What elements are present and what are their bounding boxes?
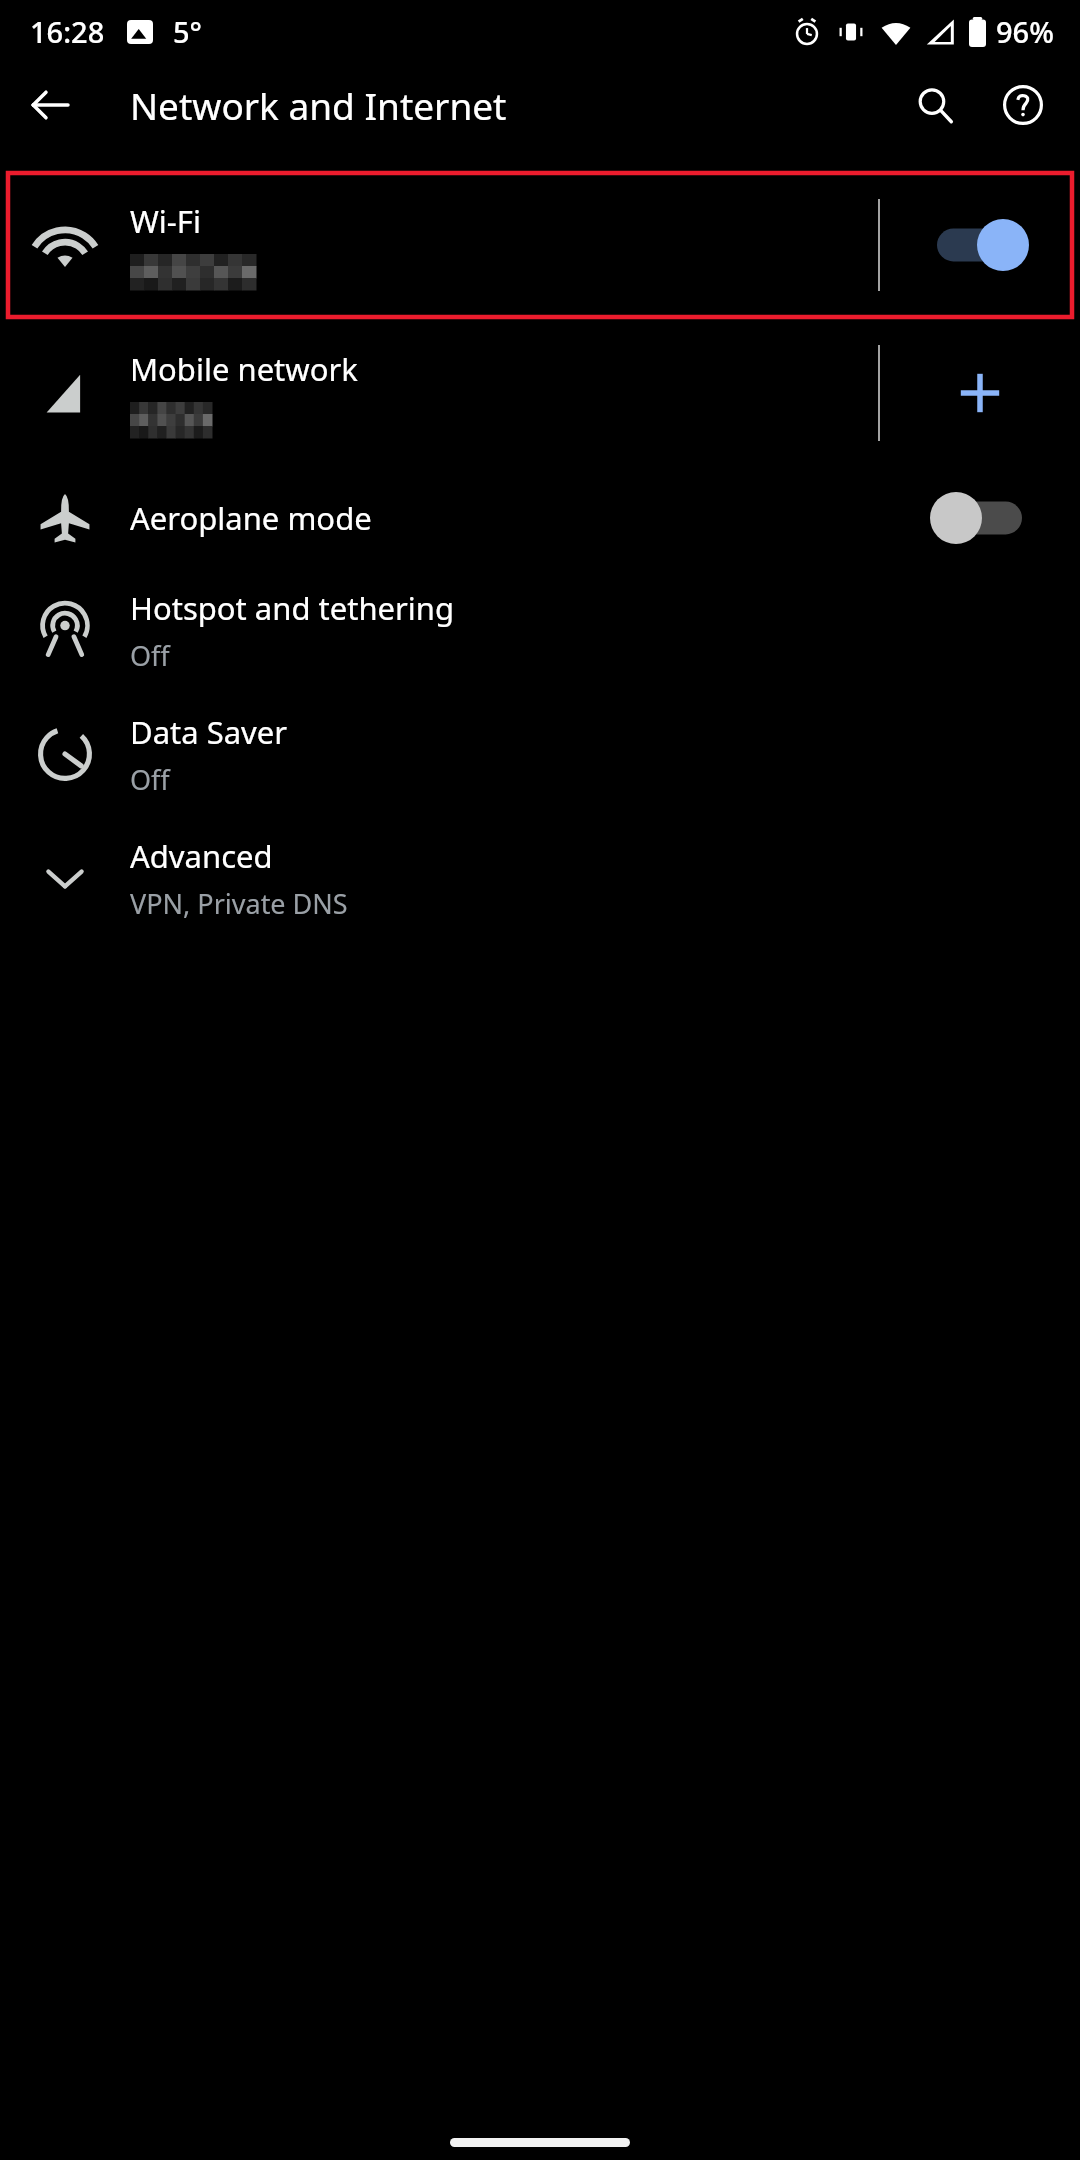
button[interactable]: Add network [880, 319, 1080, 467]
button[interactable]: Search [900, 70, 970, 140]
staticText: 16:28 [30, 12, 105, 51]
staticText: Advanced [130, 835, 273, 877]
button[interactable]: Aeroplane mode off [878, 467, 1080, 568]
button[interactable]: Wi-Fi on [880, 171, 1080, 319]
staticText: 96% [996, 12, 1054, 51]
staticText: Wi-Fi [130, 200, 201, 242]
staticText: Aeroplane mode [130, 497, 878, 539]
button[interactable]: Back [16, 71, 84, 139]
button[interactable]: Aeroplane mode [0, 467, 1080, 568]
staticText: Network and Internet [130, 80, 507, 130]
staticText: 5° [173, 12, 202, 51]
staticText: Mobile network [130, 348, 358, 390]
button[interactable]: Data Saver [0, 692, 1080, 816]
button[interactable]: Help [988, 70, 1058, 140]
staticText: VPN, Private DNS [130, 885, 348, 922]
button[interactable]: Hotspot and tethering [0, 568, 1080, 692]
staticText: Data Saver [130, 711, 288, 753]
staticText: Off [130, 637, 170, 674]
staticText: Off [130, 761, 170, 798]
button[interactable]: Mobile network [0, 319, 1080, 467]
staticText: Hotspot and tethering [130, 587, 455, 629]
button[interactable]: Advanced [0, 816, 1080, 940]
button[interactable]: Wi-Fi [0, 171, 1080, 319]
